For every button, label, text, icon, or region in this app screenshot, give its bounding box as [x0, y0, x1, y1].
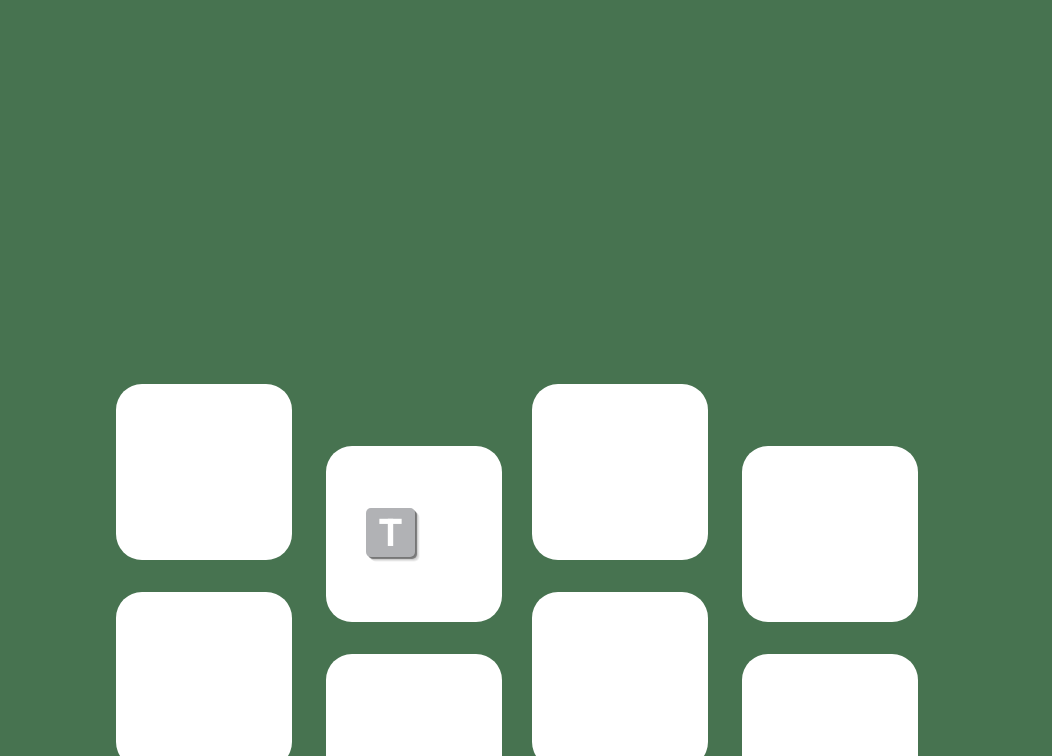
button[interactable]: Photo 5 — [116, 592, 292, 756]
other: Image unavailable — [366, 508, 426, 568]
button[interactable]: Photo 2 — [326, 446, 502, 622]
button[interactable]: Photo 7 — [532, 592, 708, 756]
button[interactable]: Photo 3 — [532, 384, 708, 560]
button[interactable]: Photo 1 — [116, 384, 292, 560]
button[interactable]: Photo 6 — [326, 654, 502, 756]
button[interactable]: Photo 4 — [742, 446, 918, 622]
button[interactable]: Photo 8 — [742, 654, 918, 756]
